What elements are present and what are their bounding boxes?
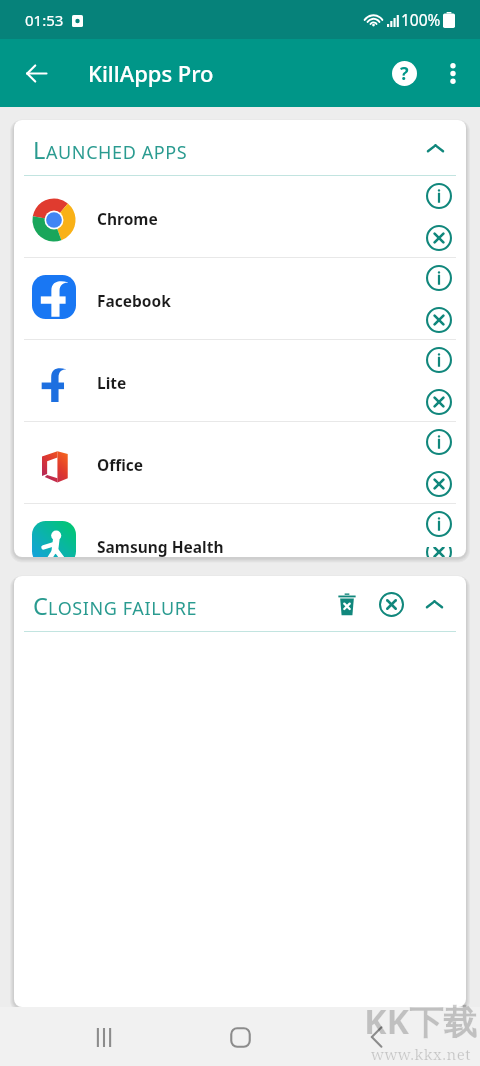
staticText: KK下载 xyxy=(364,998,478,1044)
button[interactable]: App info xyxy=(419,258,459,298)
staticText: Office xyxy=(97,454,144,475)
staticText: L xyxy=(33,134,46,166)
button[interactable]: Collapse launched apps xyxy=(415,128,455,168)
button[interactable]: Collapse closing failure xyxy=(413,583,455,625)
staticText: Lite xyxy=(97,372,127,393)
button[interactable]: Close all xyxy=(369,582,413,626)
button[interactable]: App info xyxy=(419,504,459,544)
button[interactable]: App info xyxy=(419,422,459,462)
staticText: 100% xyxy=(401,9,441,30)
button[interactable]: L xyxy=(14,120,466,175)
button[interactable]: Chrome xyxy=(14,176,466,257)
button[interactable]: Close app xyxy=(419,301,459,339)
staticText: C xyxy=(33,590,48,622)
button[interactable]: Back xyxy=(348,1009,404,1065)
button[interactable]: App info xyxy=(419,340,459,380)
staticText: www.kkx.net xyxy=(371,1044,471,1064)
button[interactable]: Close app xyxy=(419,547,459,557)
staticText: 01:53 xyxy=(25,10,64,30)
button[interactable]: Facebook xyxy=(14,258,466,339)
button[interactable]: Close app xyxy=(419,383,459,421)
button[interactable]: Close app xyxy=(419,465,459,503)
button[interactable]: More options xyxy=(431,51,475,95)
staticText: AUNCHED APPS xyxy=(46,140,188,165)
button[interactable]: Close app xyxy=(419,219,459,257)
button[interactable]: Help xyxy=(380,49,428,97)
staticText: Samsung Health xyxy=(97,536,224,557)
button[interactable]: Home xyxy=(212,1009,268,1065)
button[interactable]: Lite xyxy=(14,340,466,421)
button[interactable]: Recents xyxy=(76,1009,132,1065)
button[interactable]: Office xyxy=(14,422,466,503)
staticText: Facebook xyxy=(97,290,171,311)
staticText: KillApps Pro xyxy=(88,58,214,88)
staticText: Chrome xyxy=(97,208,158,229)
button[interactable]: C xyxy=(14,576,466,631)
button[interactable]: Back xyxy=(12,49,60,97)
staticText: ? xyxy=(400,61,409,86)
button[interactable]: Samsung Health xyxy=(14,504,466,557)
staticText: LOSING FAILURE xyxy=(48,596,198,621)
button[interactable]: Clear list xyxy=(325,582,369,626)
button[interactable]: App info xyxy=(419,176,459,216)
